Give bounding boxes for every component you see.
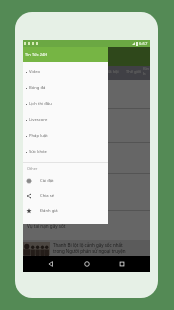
staticText: Ông chủ nhận chức đồng loạt tố cáo Weins… bbox=[27, 185, 146, 200]
staticText: Những vụ án trong bộ máy cảnh Lãnh 16 nă… bbox=[27, 151, 146, 166]
button[interactable]: Sức khỏe bbox=[23, 144, 108, 160]
button[interactable]: Những vụ án trong bộ máy cảnh Lãnh 16 nă… bbox=[23, 143, 150, 173]
button[interactable]: Người dân kéo nhau vào tờ lá bbox=[23, 80, 150, 108]
staticText: Sức khỏe bbox=[29, 149, 47, 155]
button[interactable]: Bóng đá bbox=[23, 80, 108, 96]
staticText: Video bbox=[29, 69, 41, 75]
staticText: Mới bbox=[29, 69, 37, 74]
button[interactable]: Mới bbox=[23, 66, 43, 77]
button[interactable]: Chia sẻ bbox=[23, 188, 108, 203]
staticText: 6:57 bbox=[139, 41, 148, 47]
button[interactable]: Kinh tế bbox=[143, 66, 150, 77]
button[interactable]: Thanh Bi lột lộ cảnh gây sốc nhất trong … bbox=[23, 240, 150, 256]
button[interactable]: Ông chủ nhận chức đồng loạt tố cáo Weins… bbox=[23, 174, 150, 210]
staticText: Vụ tai nạn gây sốt bbox=[27, 223, 146, 229]
staticText: Lịch thi đấu bbox=[29, 101, 52, 107]
staticText: Chia sẻ bbox=[40, 193, 55, 199]
staticText: Bóng đá bbox=[29, 85, 46, 91]
staticText: Thị trấn Pháp bị từ bỏ vì quá nhiều dân … bbox=[27, 118, 146, 133]
staticText: Livescore bbox=[29, 117, 48, 123]
staticText: Thanh Bi lột lộ cảnh gây sốc nhất trong … bbox=[53, 242, 126, 254]
button[interactable]: Xã hội bbox=[103, 66, 123, 77]
button[interactable]: Back bbox=[44, 257, 58, 271]
button[interactable]: Thế giới bbox=[123, 66, 143, 77]
button[interactable]: Livescore bbox=[23, 112, 108, 128]
staticText: Đánh giá bbox=[40, 208, 58, 214]
button[interactable]: Lịch thi đấu bbox=[23, 96, 108, 112]
staticText: Other bbox=[27, 166, 38, 171]
staticText: Pháp luật bbox=[29, 133, 48, 139]
button[interactable]: Pháp luật bbox=[23, 128, 108, 144]
button[interactable]: Recents bbox=[115, 257, 129, 271]
staticText: Người dân kéo nhau vào tờ lá bbox=[27, 91, 146, 97]
button[interactable]: Thị trấn Pháp bị từ bỏ vì quá nhiều dân … bbox=[23, 109, 150, 142]
staticText: Cài đặt bbox=[40, 178, 54, 184]
staticText: Kinh tế bbox=[143, 66, 150, 77]
button[interactable]: Video bbox=[23, 64, 108, 80]
button[interactable]: Vụ tai nạn gây sốt bbox=[23, 211, 150, 241]
staticText: Thế giới bbox=[126, 69, 141, 74]
staticText: Xã hội bbox=[107, 69, 119, 74]
staticText: Tin Tức 24H bbox=[25, 52, 48, 57]
button[interactable]: Home bbox=[80, 257, 94, 271]
button[interactable]: Cài đặt bbox=[23, 173, 108, 188]
button[interactable]: Đánh giá bbox=[23, 203, 108, 218]
